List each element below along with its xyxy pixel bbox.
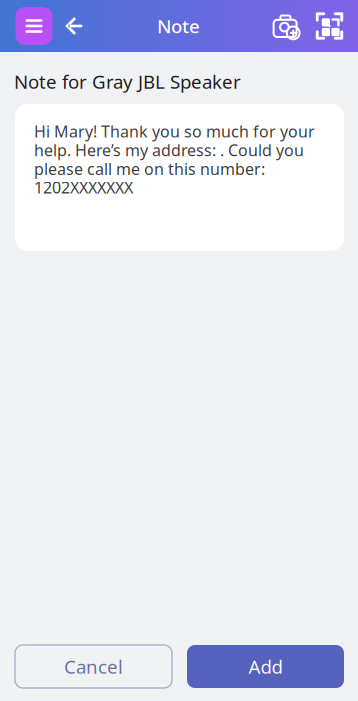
button[interactable]: Add photo bbox=[265, 0, 308, 52]
staticText: Note for Gray JBL Speaker bbox=[14, 69, 241, 94]
staticText: Note bbox=[157, 14, 200, 38]
button[interactable]: Back bbox=[56, 0, 92, 52]
button[interactable]: Cancel bbox=[15, 645, 172, 688]
staticText: Hi Mary! Thank you so much for your help… bbox=[34, 121, 315, 198]
staticText: Add bbox=[248, 654, 282, 679]
button[interactable]: Scan code bbox=[308, 0, 351, 52]
staticText: Cancel bbox=[64, 654, 123, 679]
button[interactable]: Menu bbox=[12, 0, 56, 52]
button[interactable]: Add bbox=[187, 645, 344, 688]
